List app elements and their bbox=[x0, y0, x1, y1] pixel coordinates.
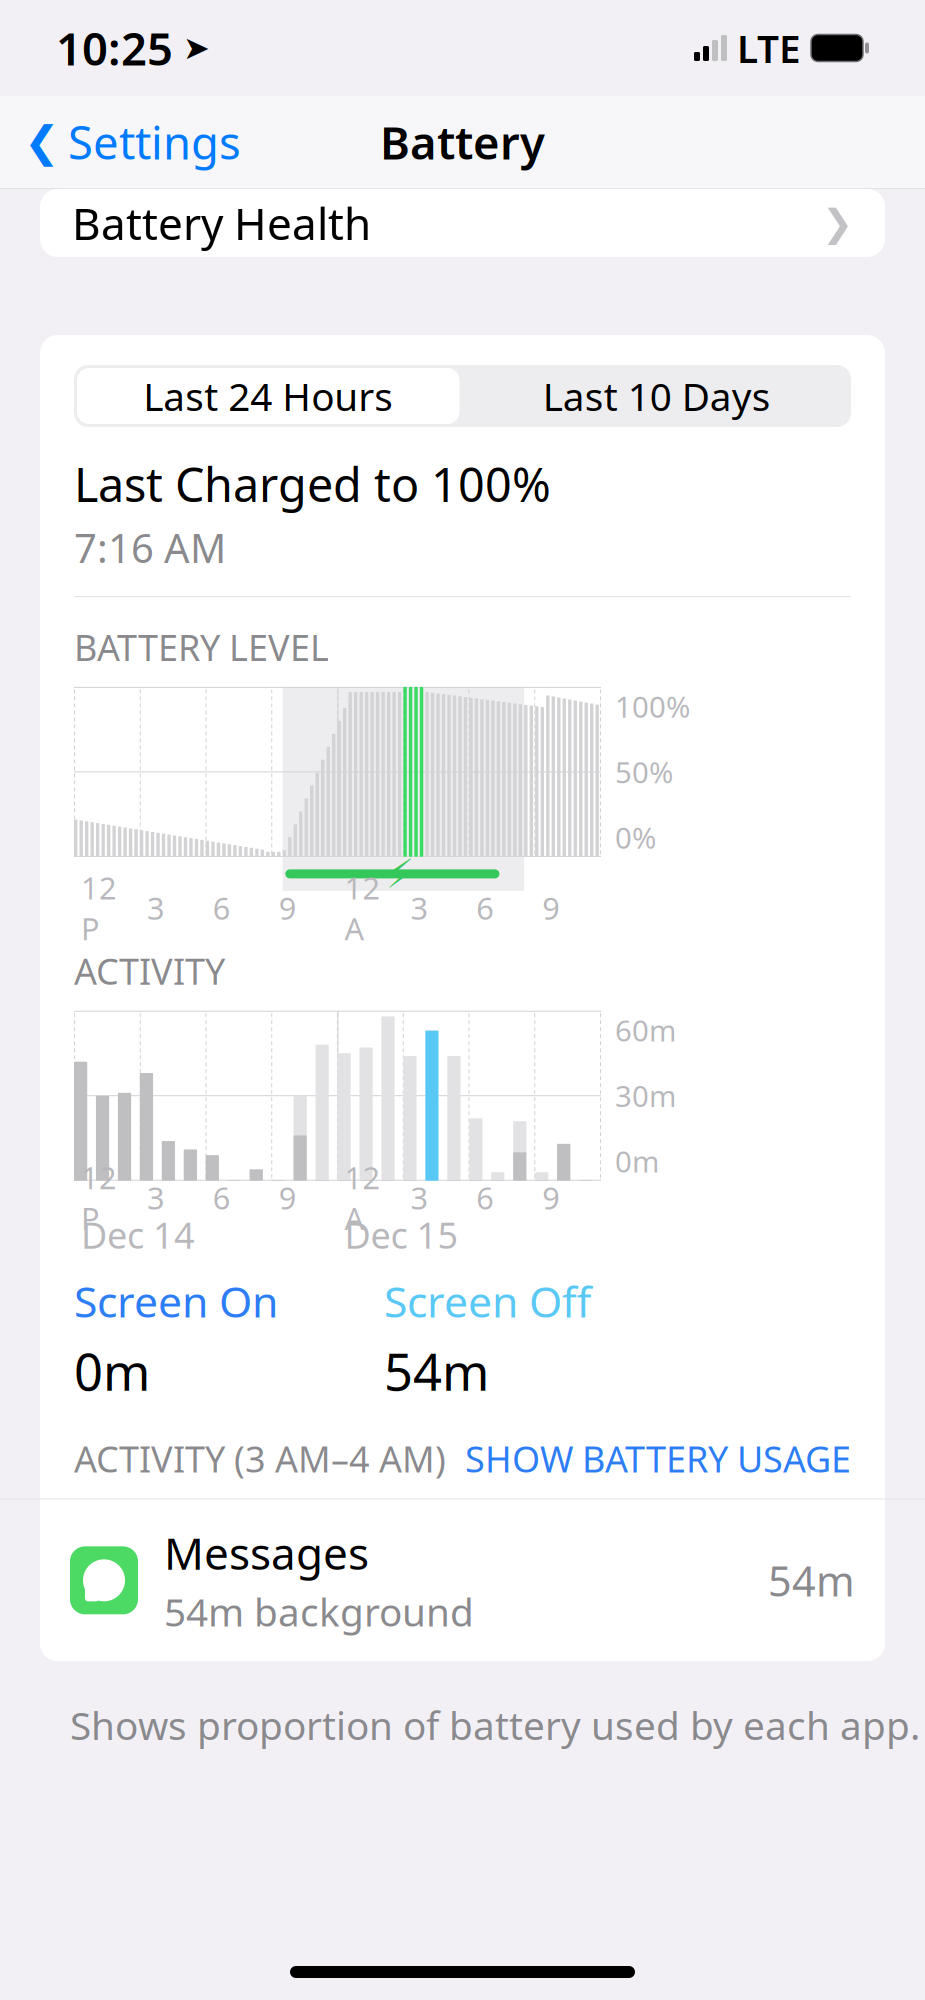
staticText: Battery Health bbox=[72, 194, 371, 252]
staticText: 6 bbox=[476, 1177, 494, 1218]
staticText: 0m bbox=[615, 1142, 659, 1181]
button[interactable]: SHOW BATTERY USAGE bbox=[465, 1435, 851, 1482]
staticText: 7:16 AM bbox=[74, 521, 226, 574]
staticText: ⚡︎ bbox=[386, 851, 414, 897]
staticText: ❯ bbox=[822, 202, 853, 244]
button[interactable]: ❮ bbox=[8, 102, 257, 182]
staticText: Last Charged to 100% bbox=[74, 453, 551, 515]
staticText: Screen Off bbox=[384, 1273, 591, 1329]
staticText: BATTERY LEVEL bbox=[74, 623, 329, 671]
staticText: 12 A bbox=[344, 1157, 380, 1238]
staticText: 100% bbox=[615, 687, 690, 726]
staticText: 9 bbox=[279, 1177, 297, 1218]
staticText: 60m bbox=[615, 1011, 676, 1050]
staticText: 6 bbox=[213, 1177, 231, 1218]
staticText: 3 bbox=[147, 887, 165, 928]
staticText: 12 P bbox=[81, 1157, 117, 1238]
staticText: 10:25 bbox=[56, 18, 173, 78]
staticText: 9 bbox=[279, 887, 297, 928]
staticText: SHOW BATTERY USAGE bbox=[465, 1435, 851, 1482]
staticText: Battery bbox=[380, 112, 545, 172]
staticText: 3 bbox=[410, 887, 428, 928]
staticText: 0m bbox=[74, 1337, 150, 1405]
staticText: 3 bbox=[410, 1177, 428, 1218]
button[interactable]: Last 10 Days bbox=[462, 365, 851, 427]
staticText: Screen On bbox=[74, 1273, 278, 1329]
staticText: 50% bbox=[615, 752, 673, 791]
staticText: 12 A bbox=[344, 867, 380, 949]
staticText: 54m background bbox=[164, 1586, 474, 1637]
staticText: 12 P bbox=[81, 867, 117, 949]
staticText: Shows proportion of battery used by each… bbox=[70, 1699, 920, 1750]
staticText: 3 bbox=[147, 1177, 165, 1218]
staticText: 6 bbox=[476, 887, 494, 928]
staticText: ACTIVITY bbox=[74, 947, 225, 995]
staticText: 54m bbox=[768, 1553, 855, 1608]
staticText: 9 bbox=[542, 1177, 560, 1218]
staticText: 30m bbox=[615, 1076, 676, 1115]
staticText: Last 10 Days bbox=[543, 370, 771, 422]
staticText: Dec 15 bbox=[344, 1211, 458, 1259]
staticText: Dec 14 bbox=[81, 1211, 195, 1259]
staticText: ❮ bbox=[24, 118, 60, 166]
button[interactable]: Battery Health bbox=[40, 189, 885, 257]
staticText: ACTIVITY (3 AM–4 AM) bbox=[74, 1435, 446, 1482]
staticText: Messages bbox=[164, 1523, 369, 1582]
button[interactable]: Last 24 Hours bbox=[74, 365, 462, 427]
staticText: ➤ bbox=[183, 30, 210, 66]
staticText: 0% bbox=[615, 818, 656, 857]
button[interactable]: Messages bbox=[40, 1499, 885, 1661]
staticText: 54m bbox=[384, 1337, 489, 1405]
staticText: Settings bbox=[68, 112, 241, 172]
staticText: Last 24 Hours bbox=[143, 370, 393, 422]
staticText: 6 bbox=[213, 887, 231, 928]
staticText: 9 bbox=[542, 887, 560, 928]
staticText: LTE bbox=[737, 22, 801, 74]
